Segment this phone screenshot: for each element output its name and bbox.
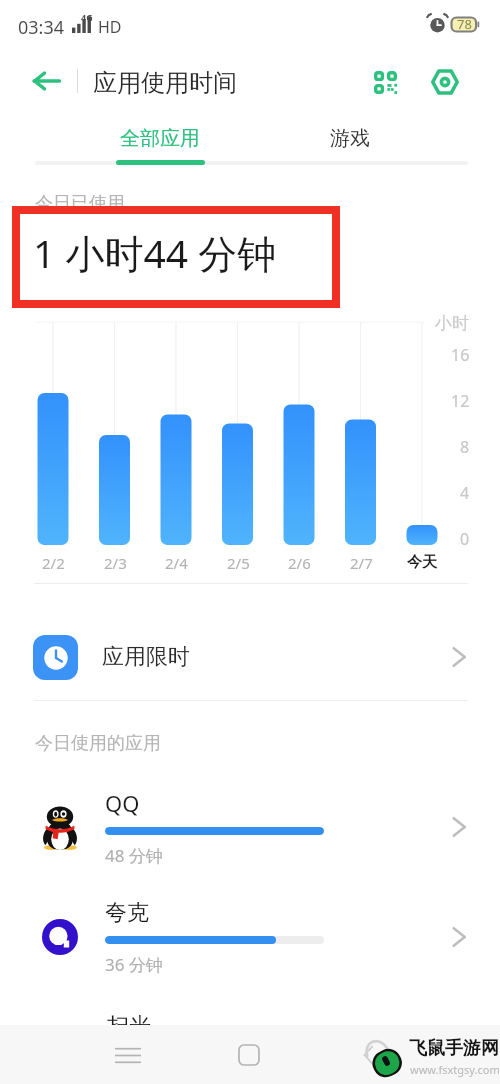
staticText: 小时 — [435, 313, 469, 334]
button[interactable]: Home — [226, 1032, 272, 1078]
staticText: 今日已使用 — [35, 192, 125, 215]
staticText: 4 — [460, 482, 470, 504]
staticText: 今天 — [407, 553, 437, 572]
staticText: 2/4 — [165, 553, 188, 573]
staticText: www.fsxtgsy.com — [410, 1062, 500, 1077]
button[interactable]: 夸克 — [0, 889, 500, 985]
staticText: QQ — [105, 788, 140, 818]
staticText: 今日使用的应用 — [35, 732, 161, 755]
button[interactable]: Back — [24, 62, 68, 100]
staticText: 0 — [460, 528, 470, 550]
staticText: 36 分钟 — [105, 953, 163, 976]
staticText: 48 分钟 — [105, 844, 163, 867]
staticText: HD — [98, 16, 122, 38]
staticText: 全部应用 — [120, 126, 200, 151]
staticText: 03:34 — [18, 15, 65, 40]
staticText: 应用使用时间 — [93, 68, 237, 98]
staticText: 12 — [451, 390, 470, 412]
button[interactable]: Recent apps — [105, 1032, 151, 1078]
staticText: 游戏 — [330, 126, 370, 151]
staticText: 1 小时44 分钟 — [33, 226, 277, 279]
button[interactable]: 应用限时 — [0, 614, 500, 700]
staticText: 夸克 — [105, 899, 149, 927]
staticText: 应用限时 — [102, 643, 190, 671]
staticText: 扫光 — [107, 1012, 151, 1040]
button[interactable]: QQ — [0, 779, 500, 875]
button[interactable]: Scan QR code — [364, 61, 406, 103]
staticText: 2/2 — [42, 553, 65, 573]
staticText: 2/7 — [350, 553, 373, 573]
staticText: 78 — [457, 15, 472, 33]
staticText: 2/6 — [288, 553, 311, 573]
button[interactable]: Back — [345, 1032, 391, 1078]
staticText: 4G — [81, 11, 93, 23]
button[interactable]: 全部应用 — [60, 116, 260, 160]
staticText: 飞鼠手游网 — [409, 1037, 499, 1060]
staticText: 2/3 — [104, 553, 127, 573]
button[interactable]: 游戏 — [270, 116, 430, 160]
staticText: 16 — [451, 344, 470, 366]
staticText: 2/5 — [227, 553, 250, 573]
staticText: 8 — [460, 436, 470, 458]
button[interactable]: Settings — [424, 61, 466, 103]
